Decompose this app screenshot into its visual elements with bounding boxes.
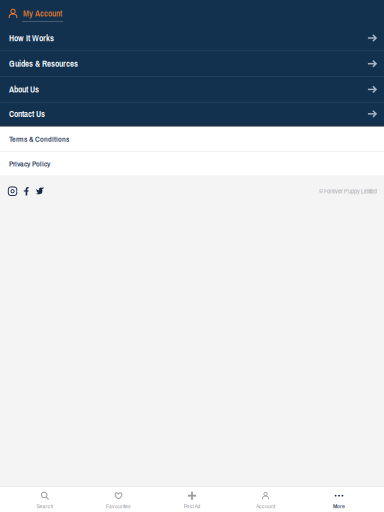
staticText: Post Ad [183, 502, 200, 510]
staticText: My Account [23, 7, 62, 19]
button[interactable]: Privacy Policy [0, 152, 384, 175]
staticText: About Us [9, 84, 39, 95]
button[interactable]: Post Ad [155, 492, 229, 508]
button[interactable]: How It Works [0, 25, 384, 50]
button[interactable]: Contact Us [0, 103, 384, 125]
button[interactable]: Account [229, 492, 302, 508]
button[interactable]: Search [8, 492, 82, 508]
staticText: How It Works [9, 32, 54, 44]
staticText: © Forever Puppy Limited [319, 187, 377, 195]
button[interactable]: My Account [0, 0, 384, 25]
staticText: Terms & Conditions [9, 134, 69, 144]
staticText: More [333, 502, 345, 510]
staticText: Account [256, 502, 275, 510]
button[interactable]: Favourites [82, 492, 155, 508]
button[interactable]: About Us [0, 77, 384, 102]
button[interactable]: More [302, 492, 376, 508]
staticText: Favourites [106, 502, 131, 510]
button[interactable]: Twitter [36, 187, 44, 195]
button[interactable]: Facebook [24, 187, 29, 195]
staticText: Privacy Policy [9, 158, 50, 169]
staticText: Guides & Resources [9, 58, 78, 70]
button[interactable]: Instagram [8, 187, 17, 195]
staticText: Search [36, 502, 53, 510]
staticText: Contact Us [9, 108, 45, 120]
button[interactable]: Guides & Resources [0, 51, 384, 76]
button[interactable]: Terms & Conditions [0, 127, 384, 151]
